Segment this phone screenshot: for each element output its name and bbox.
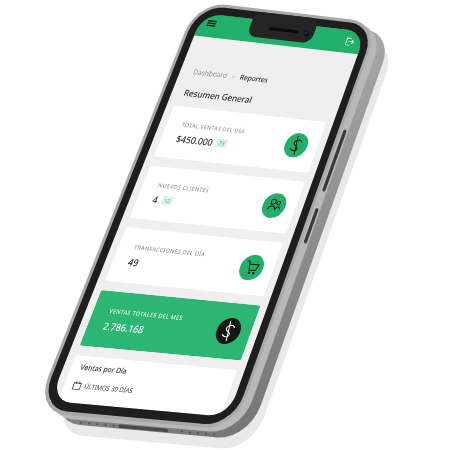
staticText: $450.000 [60, 305, 159, 336]
staticText: Resumen General [33, 190, 220, 220]
staticText: Reportes [165, 139, 243, 164]
staticText: NUEVOS CLIENTES [60, 429, 197, 448]
staticText: > [143, 142, 152, 162]
button[interactable]: TOTAL VENTAS DEL DÍA [19, 240, 441, 371]
staticText: TOTAL VENTAS DEL DÍA [60, 276, 232, 295]
staticText: 73 [176, 312, 191, 330]
button[interactable]: NUEVOS CLIENTES [19, 393, 441, 450]
